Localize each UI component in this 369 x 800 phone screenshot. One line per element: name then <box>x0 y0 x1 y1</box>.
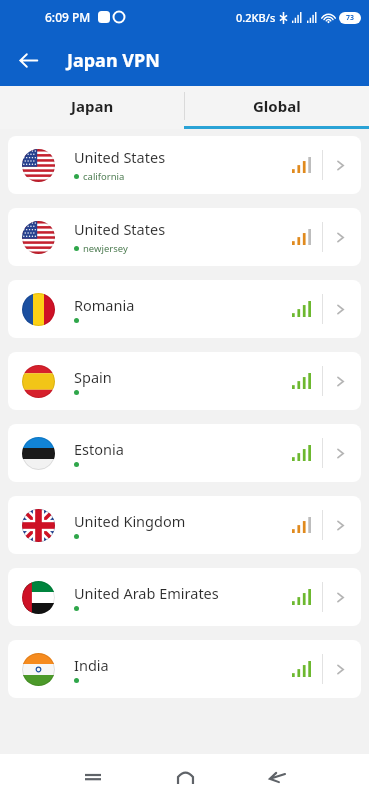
staticText: India <box>74 655 109 675</box>
button[interactable]: United States <box>8 136 361 194</box>
staticText: newjersey <box>83 242 128 255</box>
staticText: Japan <box>71 96 114 116</box>
button[interactable]: Back <box>10 42 46 78</box>
button[interactable]: Japan <box>0 86 184 126</box>
staticText: Spain <box>74 367 112 387</box>
button[interactable]: United Kingdom <box>8 496 361 554</box>
staticText: Global <box>253 96 301 116</box>
button[interactable]: Estonia <box>8 424 361 482</box>
staticText: United Kingdom <box>74 511 186 531</box>
button[interactable]: India <box>8 640 361 698</box>
button[interactable]: United States <box>8 208 361 266</box>
button[interactable]: Spain <box>8 352 361 410</box>
button[interactable]: Romania <box>8 280 361 338</box>
button[interactable]: United Arab Emirates <box>8 568 361 626</box>
staticText: Romania <box>74 295 135 315</box>
staticText: 0.2KB/s <box>236 10 276 25</box>
staticText: Japan VPN <box>67 48 160 73</box>
button[interactable]: Global <box>185 86 369 126</box>
button[interactable]: Recents <box>46 754 139 800</box>
button[interactable]: Back <box>231 754 323 800</box>
button[interactable]: Home <box>139 754 231 800</box>
staticText: Estonia <box>74 439 124 459</box>
staticText: United States <box>74 219 166 239</box>
staticText: 6:09 PM <box>45 9 91 25</box>
staticText: United Arab Emirates <box>74 583 219 603</box>
staticText: United States <box>74 147 166 167</box>
staticText: california <box>83 170 125 183</box>
staticText: 73 <box>346 13 355 23</box>
